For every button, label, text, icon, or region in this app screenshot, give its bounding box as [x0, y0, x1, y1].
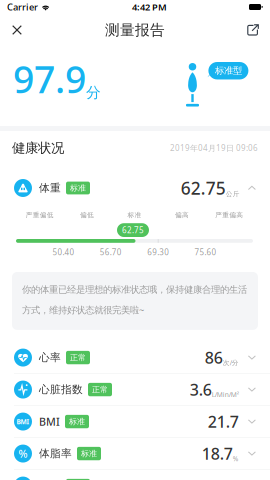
staticText: 56.70 [100, 247, 122, 257]
staticText: 4:42 PM [132, 1, 167, 13]
staticText: 偏高 [175, 211, 189, 219]
button[interactable]: Share [238, 15, 268, 45]
staticText: 标准 [127, 211, 141, 219]
staticText: 公斤 [226, 190, 240, 198]
staticText: 3.6 [190, 379, 212, 400]
staticText: BMI [39, 414, 60, 429]
button[interactable]: BMI [0, 406, 270, 437]
staticText: % [18, 446, 27, 461]
staticText: 标准 [81, 449, 97, 458]
staticText: 次/分 [223, 358, 239, 367]
staticText: 心脏指数 [39, 383, 83, 396]
staticText: 分 [86, 84, 101, 102]
staticText: 标准型 [215, 65, 242, 76]
staticText: 体脂率 [39, 447, 72, 460]
staticText: 体重 [39, 181, 61, 194]
staticText: 69.30 [147, 247, 169, 257]
button[interactable]: Close [2, 15, 32, 45]
staticText: 62.75 [122, 225, 144, 235]
staticText: Carrier [7, 1, 38, 13]
staticText: 97.9 [13, 54, 86, 104]
staticText: 标准 [70, 183, 86, 193]
staticText: 75.60 [195, 247, 217, 257]
staticText: 健康状况 [12, 140, 64, 156]
staticText: 21.7 [208, 411, 239, 432]
staticText: 严重偏高 [215, 211, 243, 219]
staticText: 偏低 [80, 211, 94, 219]
staticText: 心率 [39, 351, 61, 364]
staticText: BMI [16, 417, 29, 426]
button[interactable]: 心脏指数 [0, 374, 270, 405]
staticText: 测量报告 [105, 21, 165, 39]
staticText: 正常 [92, 385, 108, 394]
staticText: % [233, 454, 239, 463]
staticText: 方式，维持好状态就很完美啦~ [22, 303, 144, 316]
button[interactable]: 心率 [0, 342, 270, 373]
staticText: 50.40 [52, 247, 74, 257]
staticText: 86 [205, 347, 223, 368]
staticText: L/Min/M² [212, 390, 239, 399]
staticText: 正常 [70, 353, 86, 362]
button[interactable]: 水分 [0, 470, 270, 480]
staticText: 2019年04月19日 09:06 [170, 143, 258, 153]
staticText: 标准 [69, 417, 85, 426]
button[interactable]: % [0, 438, 270, 469]
staticText: 严重偏低 [26, 211, 54, 219]
staticText: 18.7 [202, 443, 233, 464]
staticText: 62.75 [181, 176, 226, 199]
staticText: 你的体重已经是理想的标准状态哦，保持健康合理的生活 [22, 284, 247, 295]
button[interactable]: 体重 [0, 165, 270, 211]
